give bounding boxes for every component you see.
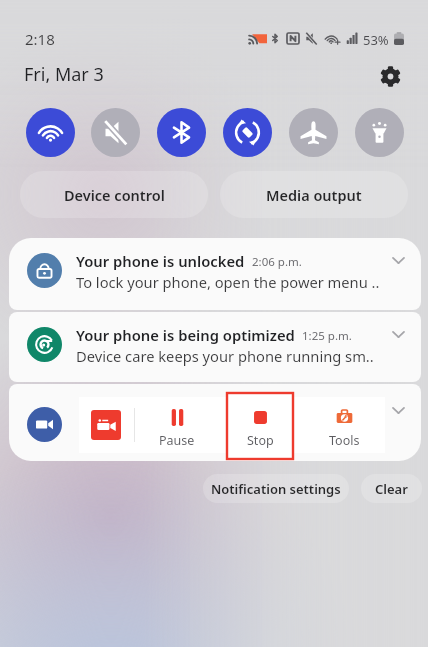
button[interactable]: Tools bbox=[311, 393, 377, 459]
staticText: 2:18 bbox=[25, 29, 55, 49]
staticText: Device care keeps your phone running sm.… bbox=[76, 346, 374, 366]
staticText: Your phone is unlocked bbox=[76, 251, 245, 271]
staticText: Tools bbox=[329, 432, 360, 449]
staticText: Clear bbox=[375, 480, 408, 498]
staticText: Fri, Mar 3 bbox=[24, 62, 104, 87]
staticText: Device control bbox=[64, 185, 165, 205]
staticText: Your phone is being optimized bbox=[76, 325, 295, 345]
button[interactable]: Sound bbox=[91, 108, 140, 157]
button[interactable]: Settings bbox=[374, 60, 407, 93]
button[interactable]: Recording bbox=[91, 410, 121, 440]
button[interactable]: Your phone is being optimized bbox=[9, 312, 421, 382]
button[interactable]: Airplane mode bbox=[289, 108, 338, 157]
staticText: Pause bbox=[159, 432, 195, 449]
button[interactable]: Notification settings bbox=[203, 474, 349, 503]
button[interactable]: Bluetooth bbox=[157, 108, 206, 157]
staticText: Notification settings bbox=[211, 480, 341, 498]
button[interactable]: Auto rotate bbox=[223, 108, 272, 157]
staticText: Stop bbox=[247, 432, 274, 449]
staticText: 2:06 p.m. bbox=[252, 254, 302, 270]
staticText: 53% bbox=[363, 31, 389, 49]
button[interactable]: Expand notification bbox=[387, 323, 409, 345]
button[interactable]: Your phone is unlocked bbox=[9, 238, 421, 310]
button[interactable]: Media output bbox=[220, 171, 408, 218]
button[interactable]: Stop bbox=[227, 393, 293, 459]
button[interactable]: Pause bbox=[144, 393, 210, 459]
button[interactable]: Screen recorder bbox=[27, 407, 62, 442]
staticText: 1:25 p.m. bbox=[302, 328, 352, 344]
button[interactable]: Wi-Fi bbox=[26, 108, 75, 157]
button[interactable]: Clear bbox=[361, 474, 422, 503]
staticText: To lock your phone, open the power menu … bbox=[76, 272, 380, 292]
staticText: Media output bbox=[266, 185, 362, 205]
button[interactable]: Expand notification bbox=[387, 249, 409, 271]
button[interactable]: Flashlight bbox=[355, 108, 404, 157]
button[interactable]: Device control bbox=[20, 171, 208, 218]
button[interactable]: Expand notification bbox=[387, 399, 409, 421]
